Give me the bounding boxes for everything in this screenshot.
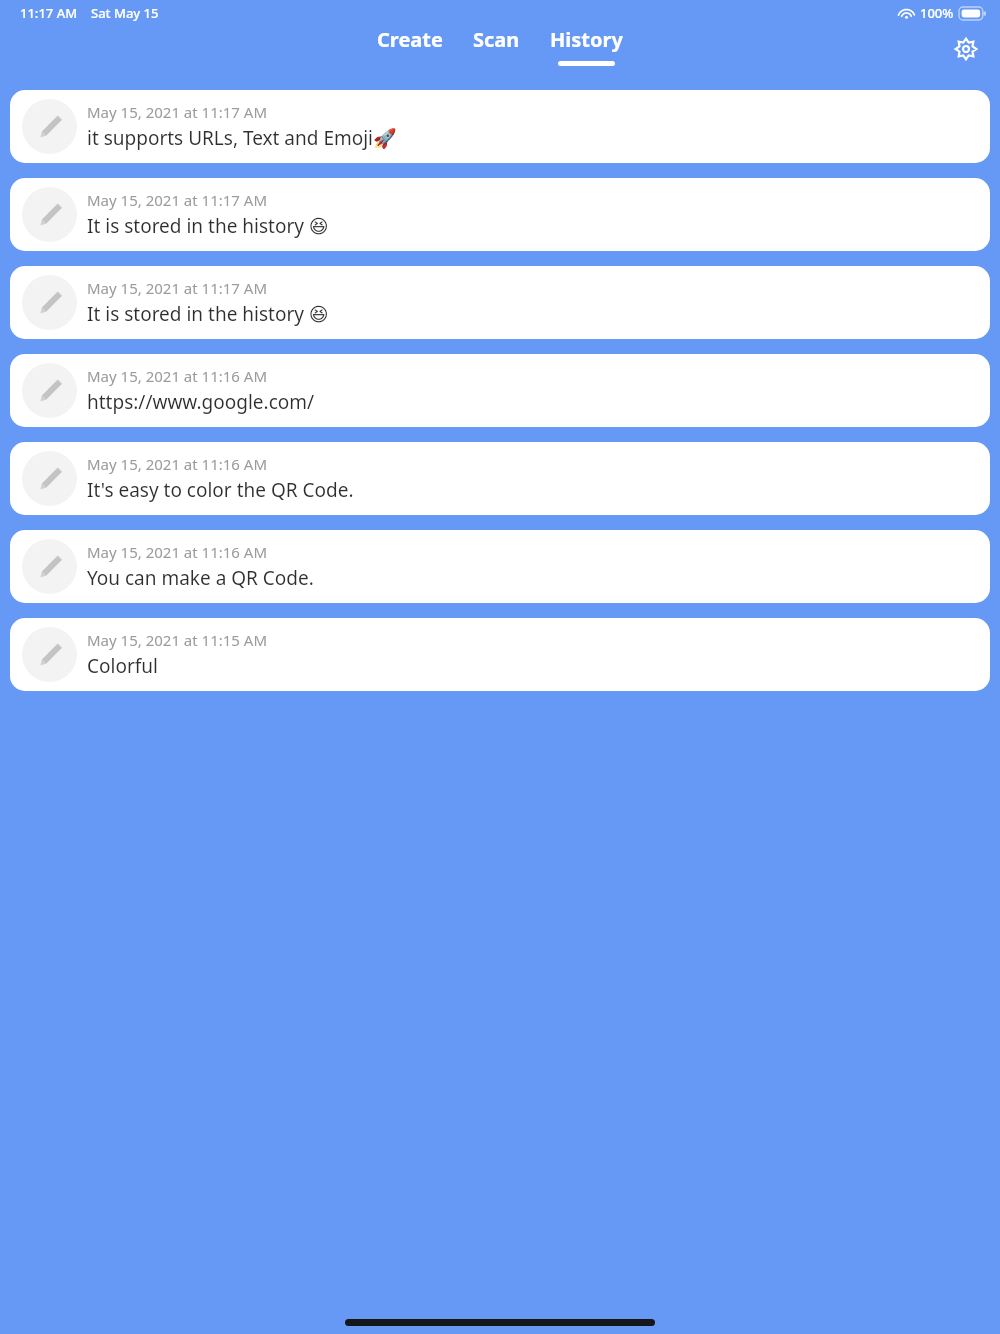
staticText: 100% bbox=[920, 4, 954, 22]
button[interactable]: Settings bbox=[943, 26, 989, 72]
button[interactable]: May 15, 2021 at 11:16 AM bbox=[10, 442, 990, 515]
staticText: May 15, 2021 at 11:17 AM bbox=[87, 190, 268, 210]
staticText: https://www.google.com/ bbox=[87, 389, 315, 415]
staticText: May 15, 2021 at 11:17 AM bbox=[87, 102, 268, 122]
button[interactable]: May 15, 2021 at 11:16 AM bbox=[10, 354, 990, 427]
staticText: it supports URLs, Text and Emoji🚀 bbox=[87, 125, 397, 151]
button[interactable]: May 15, 2021 at 11:16 AM bbox=[10, 530, 990, 603]
button[interactable]: May 15, 2021 at 11:17 AM bbox=[10, 178, 990, 251]
staticText: It is stored in the history 😆 bbox=[87, 213, 329, 239]
staticText: May 15, 2021 at 11:16 AM bbox=[87, 454, 268, 474]
staticText: May 15, 2021 at 11:15 AM bbox=[87, 630, 268, 650]
staticText: May 15, 2021 at 11:16 AM bbox=[87, 542, 268, 562]
button[interactable]: Create bbox=[375, 26, 445, 61]
button[interactable]: History bbox=[548, 26, 625, 66]
staticText: 11:17 AM bbox=[20, 4, 78, 22]
button[interactable]: May 15, 2021 at 11:17 AM bbox=[10, 266, 990, 339]
staticText: Create bbox=[377, 26, 443, 53]
staticText: You can make a QR Code. bbox=[87, 565, 314, 591]
staticText: Sat May 15 bbox=[91, 4, 159, 22]
staticText: History bbox=[550, 26, 623, 53]
staticText: It is stored in the history 😆 bbox=[87, 301, 329, 327]
staticText: It's easy to color the QR Code. bbox=[87, 477, 354, 503]
staticText: May 15, 2021 at 11:16 AM bbox=[87, 366, 268, 386]
button[interactable]: May 15, 2021 at 11:15 AM bbox=[10, 618, 990, 691]
staticText: May 15, 2021 at 11:17 AM bbox=[87, 278, 268, 298]
staticText: Scan bbox=[473, 26, 520, 53]
staticText: Colorful bbox=[87, 653, 158, 679]
button[interactable]: May 15, 2021 at 11:17 AM bbox=[10, 90, 990, 163]
button[interactable]: Scan bbox=[471, 26, 522, 61]
